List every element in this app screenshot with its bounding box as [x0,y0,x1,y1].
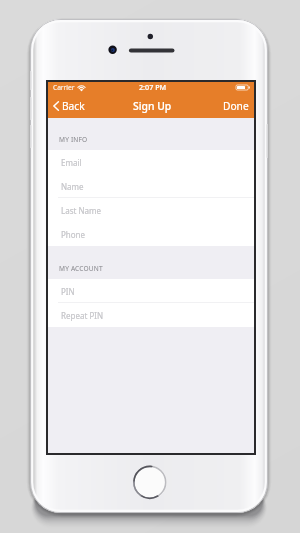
staticText: PIN [61,286,75,297]
button[interactable]: Name [48,174,254,198]
staticText: Back [62,99,85,113]
staticText: MY INFO [59,135,88,144]
button[interactable]: Phone [48,222,254,246]
staticText: Carrier [53,83,75,92]
staticText: Phone [61,229,86,240]
staticText: 2:07 PM [139,82,167,92]
button[interactable]: Repeat PIN [48,303,254,327]
button[interactable]: Last Name [48,198,254,222]
staticText: MY ACCOUNT [59,264,103,273]
button[interactable]: Done [215,96,254,116]
staticText: Done [223,99,249,113]
staticText: Email [61,157,82,168]
button[interactable]: Email [48,150,254,174]
button[interactable]: Back [48,96,93,116]
staticText: Sign Up [133,99,172,113]
staticText: Name [61,181,84,192]
staticText: Last Name [61,205,102,216]
button[interactable]: PIN [48,279,254,303]
staticText: Repeat PIN [61,310,104,321]
